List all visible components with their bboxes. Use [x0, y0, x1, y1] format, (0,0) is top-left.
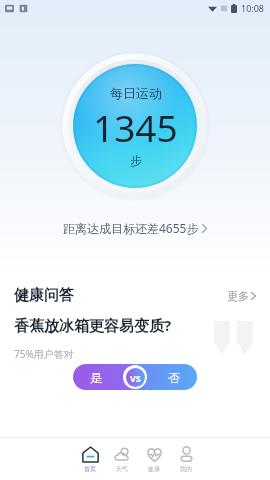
button[interactable]: 天气 [106, 438, 138, 480]
button[interactable]: 距离达成目标还差4655步 [0, 220, 270, 236]
button[interactable]: 首页 [74, 438, 106, 480]
staticText: 距离达成目标还差4655步 [63, 220, 199, 236]
staticText: 每日运动 [110, 85, 162, 101]
button[interactable]: 香蕉放冰箱更容易变质? [0, 315, 270, 415]
staticText: 步 [130, 153, 142, 168]
button[interactable]: 我的 [170, 438, 202, 480]
staticText: 更多 [227, 289, 249, 303]
staticText: 10:08 [241, 2, 265, 14]
button[interactable]: 是 [73, 364, 135, 390]
staticText: 75%用户答对 [14, 347, 74, 361]
staticText: VS [130, 372, 141, 384]
staticText: 是 [90, 370, 102, 385]
staticText: 首页 [84, 465, 96, 473]
button[interactable]: 健康 [138, 438, 170, 480]
button[interactable]: 每日运动 1345 步 [59, 50, 211, 202]
staticText: 1345 [93, 102, 178, 152]
staticText: 健康问答 [14, 286, 74, 305]
staticText: 香蕉放冰箱更容易变质? [14, 315, 172, 335]
button[interactable]: 否 [135, 364, 197, 390]
button[interactable]: 更多 [227, 289, 256, 303]
staticText: 否 [168, 370, 180, 385]
staticText: 健康 [148, 465, 160, 473]
staticText: 天气 [116, 465, 128, 473]
staticText: 我的 [180, 465, 192, 473]
